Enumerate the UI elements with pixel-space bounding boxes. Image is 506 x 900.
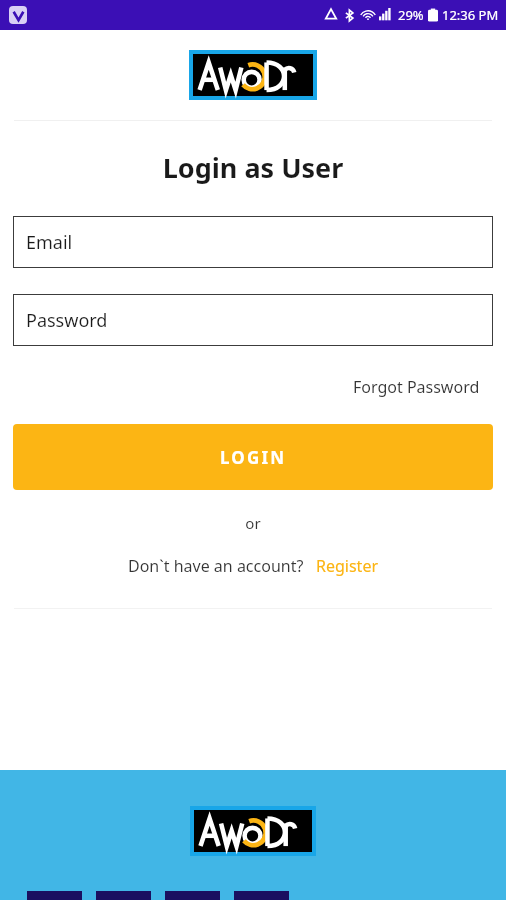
button[interactable]: Forgot Password bbox=[349, 372, 484, 402]
staticText: LOGIN bbox=[220, 446, 287, 469]
button[interactable]: Email bbox=[13, 216, 493, 268]
staticText: Forgot Password bbox=[353, 376, 480, 398]
staticText: or bbox=[0, 513, 506, 533]
staticText: Register bbox=[316, 555, 379, 577]
staticText: 29% bbox=[398, 6, 424, 24]
staticText: 12:36 PM bbox=[442, 6, 499, 24]
button[interactable]: Register bbox=[316, 555, 379, 577]
staticText: Password bbox=[26, 308, 108, 333]
staticText: Login as User bbox=[0, 149, 506, 186]
staticText: Don`t have an account? bbox=[128, 555, 304, 577]
staticText: Email bbox=[26, 230, 73, 255]
button[interactable]: Password bbox=[13, 294, 493, 346]
button[interactable]: LOGIN bbox=[13, 424, 493, 490]
